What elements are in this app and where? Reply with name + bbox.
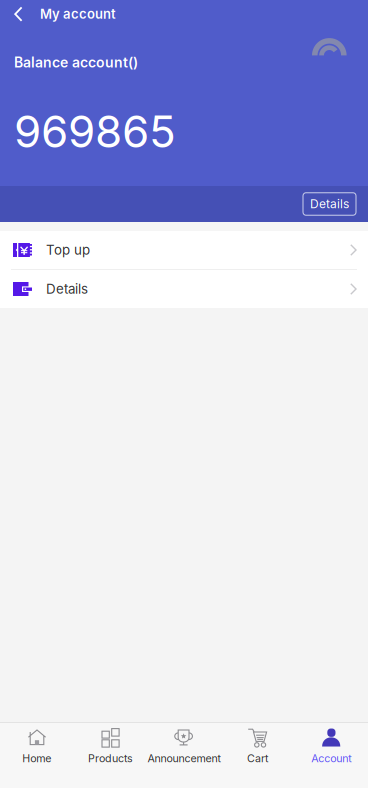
staticText: 969865 — [14, 105, 176, 158]
button[interactable]: Details — [0, 270, 368, 308]
staticText: Announcement — [147, 752, 220, 765]
button[interactable]: Products — [74, 723, 147, 788]
staticText: Products — [88, 752, 133, 765]
staticText: Balance account() — [14, 54, 138, 71]
button[interactable]: Account — [294, 723, 368, 788]
staticText: Top up — [46, 242, 90, 258]
staticText: Cart — [247, 752, 268, 765]
staticText: Account — [311, 752, 351, 765]
button[interactable]: Cart — [221, 723, 294, 788]
staticText: My account — [40, 6, 116, 22]
button[interactable]: Home — [0, 723, 74, 788]
button[interactable]: Back — [0, 0, 34, 27]
button[interactable]: Announcement — [147, 723, 221, 788]
staticText: Home — [22, 752, 51, 765]
staticText: Details — [46, 281, 88, 297]
button[interactable]: Details — [303, 193, 356, 215]
staticText: Details — [310, 197, 349, 211]
button[interactable]: Top up — [0, 231, 368, 269]
